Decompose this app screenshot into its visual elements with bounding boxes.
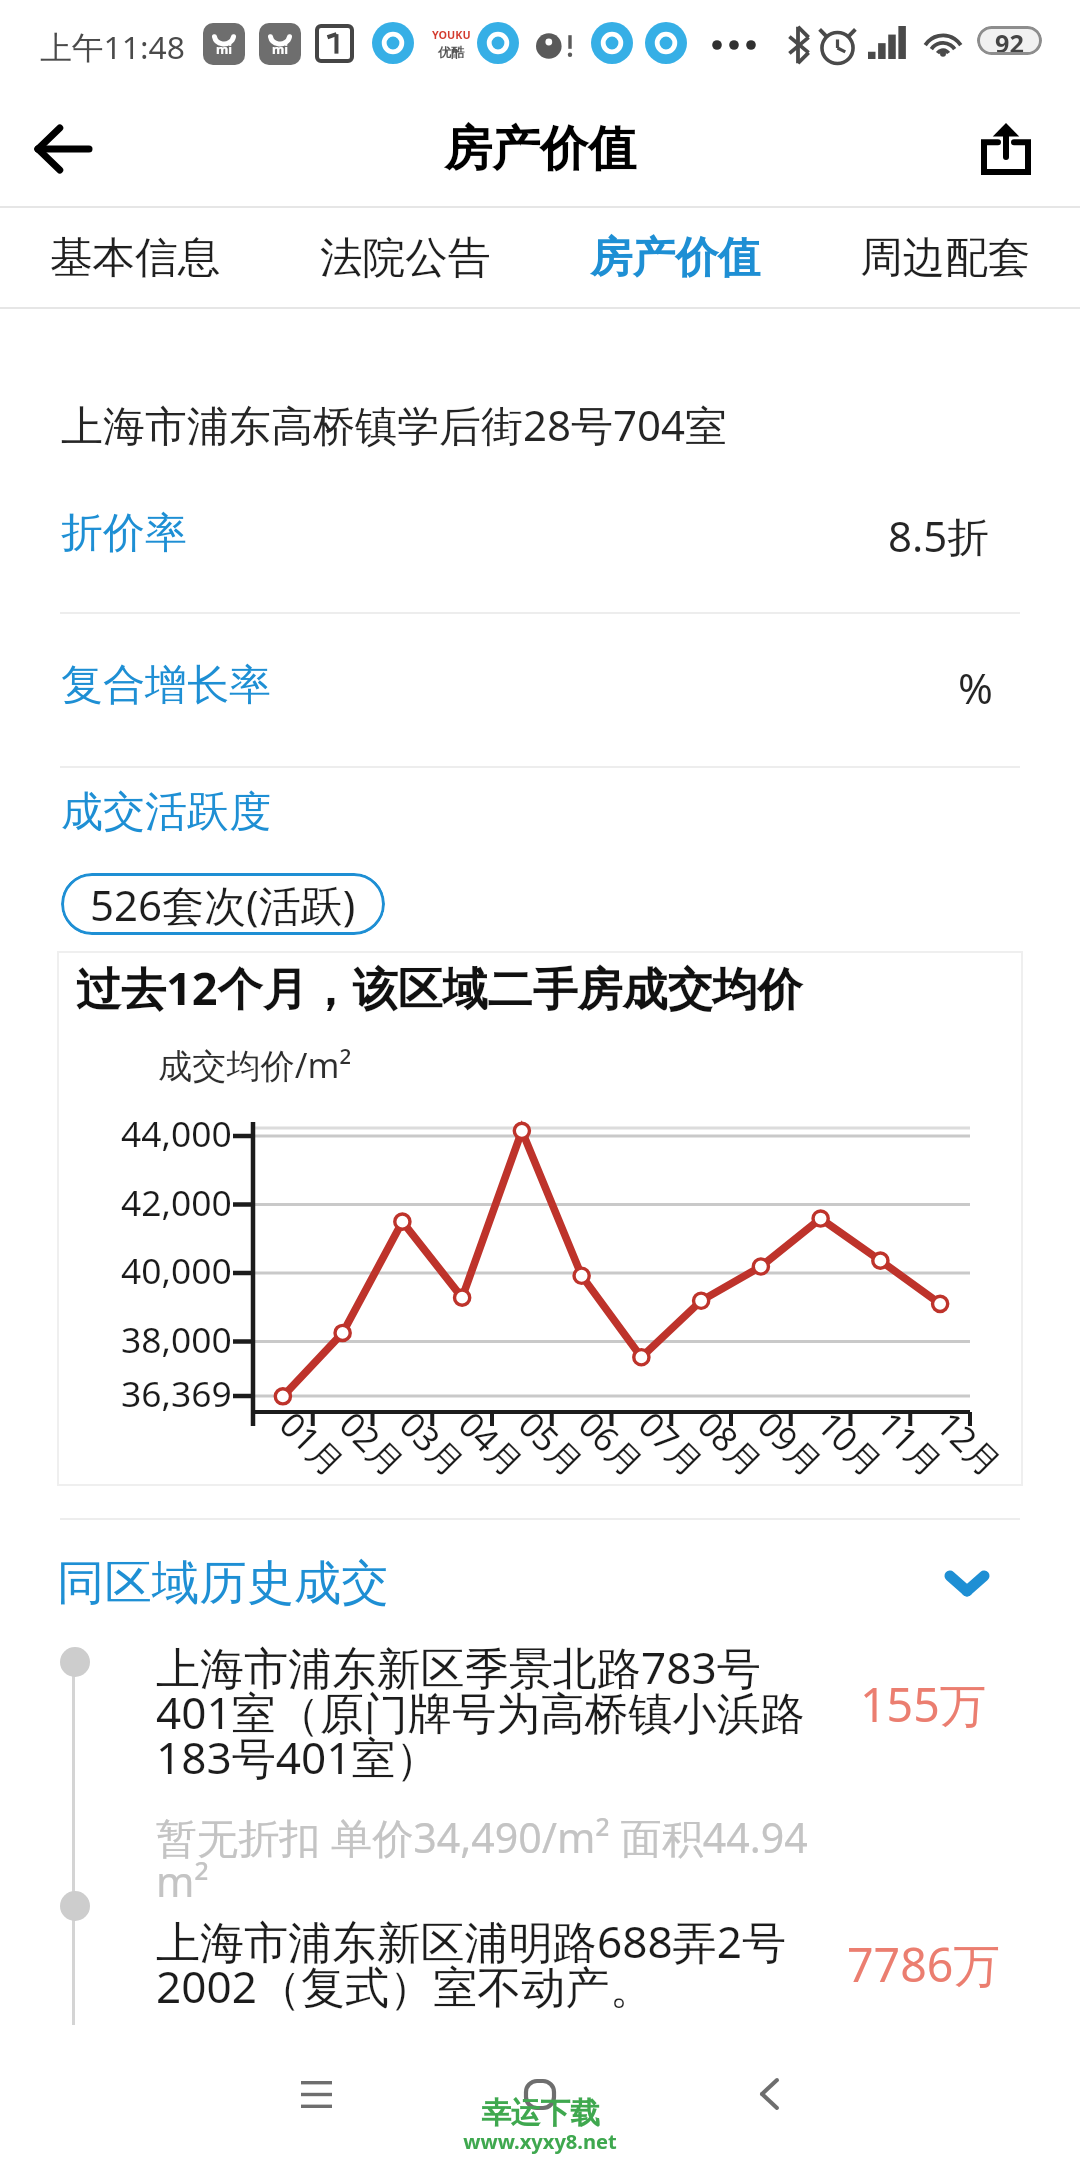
staticText: 房产价值 [590, 231, 761, 285]
staticText: 05月 [509, 1401, 595, 1486]
staticText: 成交均价/m² [158, 1041, 352, 1088]
button[interactable]: 基本信息 [0, 206, 270, 309]
button[interactable]: Recent apps [252, 2048, 380, 2140]
button[interactable]: 同区域历史成交 [0, 1537, 1080, 1629]
staticText: 07月 [629, 1401, 715, 1486]
button[interactable]: 526套次(活跃) [61, 873, 385, 935]
staticText: 44,000 [121, 1109, 232, 1157]
staticText: 155万 [860, 1672, 987, 1736]
button[interactable] [0, 613, 1080, 766]
button[interactable]: Back [0, 90, 124, 207]
button[interactable]: 法院公告 [270, 206, 540, 309]
staticText: 幸运下载 [481, 2094, 600, 2131]
staticText: 房产价值 [444, 119, 636, 179]
staticText: 上海市浦东高桥镇学后街28号704室 [61, 396, 728, 453]
staticText: 38,000 [121, 1315, 232, 1363]
other: Collapse [945, 1572, 989, 1595]
button[interactable] [0, 1885, 1080, 2025]
staticText: mi [216, 41, 233, 58]
staticText: 过去12个月，该区域二手房成交均价 [76, 957, 803, 1018]
button[interactable]: Home [476, 2048, 604, 2140]
staticText: 526套次(活跃) [90, 876, 356, 933]
button[interactable]: 房产价值 [540, 206, 810, 309]
staticText: 成交活跃度 [61, 786, 271, 839]
staticText: 7786万 [847, 1932, 1000, 1996]
staticText: 暂无折扣 单价34,490/m² 面积44.94 [156, 1809, 808, 1865]
staticText: m² [156, 1853, 209, 1909]
staticText: 周边配套 [860, 231, 1031, 285]
staticText: 04月 [449, 1401, 535, 1486]
staticText: 上海市浦东新区浦明路688弄2号2002（复式）室不动产。 [156, 1911, 821, 2016]
staticText: 92 [995, 26, 1024, 55]
staticText: % [958, 659, 993, 716]
staticText: www.xyxy8.net [463, 2128, 617, 2155]
staticText: 上海市浦东新区季景北路783号401室（原门牌号为高桥镇小浜路183号401室） [156, 1637, 821, 1787]
staticText: 06月 [569, 1401, 655, 1486]
staticText: 11月 [868, 1401, 954, 1486]
staticText: 优酷 [438, 44, 465, 61]
button[interactable]: Back [705, 2048, 833, 2140]
staticText: 08月 [688, 1401, 774, 1486]
staticText: 01月 [270, 1401, 356, 1486]
staticText: 8.5折 [888, 507, 990, 564]
staticText: 上午11:48 [40, 25, 185, 68]
staticText: YOUKU [432, 27, 471, 42]
staticText: mi [272, 41, 289, 58]
staticText: 同区域历史成交 [57, 1553, 389, 1613]
staticText: 12月 [927, 1401, 1013, 1486]
button[interactable] [0, 1610, 1080, 1870]
staticText: 02月 [330, 1401, 416, 1486]
staticText: 09月 [748, 1401, 834, 1486]
button[interactable]: Share [944, 90, 1068, 207]
button[interactable] [0, 476, 1080, 612]
staticText: 折价率 [61, 507, 187, 560]
button[interactable]: 周边配套 [810, 206, 1080, 309]
staticText: 03月 [390, 1401, 476, 1486]
staticText: 42,000 [121, 1178, 232, 1226]
staticText: 法院公告 [320, 231, 491, 285]
staticText: 40,000 [121, 1246, 232, 1294]
staticText: 基本信息 [50, 231, 221, 285]
staticText: 10月 [808, 1401, 894, 1486]
staticText: 36,369 [121, 1369, 232, 1417]
staticText: 复合增长率 [61, 659, 271, 712]
